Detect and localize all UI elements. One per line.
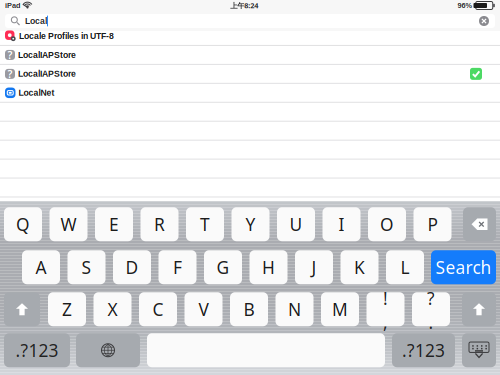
button[interactable]: Q [4,207,42,241]
button[interactable] [4,292,40,326]
staticText: O [380,213,394,236]
staticText: P [427,213,437,236]
button[interactable]: M [321,292,359,326]
button[interactable]: G [204,250,242,284]
button[interactable] [462,333,496,367]
staticText: K [354,256,365,279]
staticText: LocalIAPStore [18,69,76,79]
button[interactable]: W [49,207,87,241]
staticText: .?123 [402,339,445,362]
staticText: Search [435,256,491,279]
staticText: N [288,298,301,321]
staticText: A [35,256,46,279]
button[interactable]: Search field [5,14,495,28]
staticText: ? [427,287,435,310]
staticText: 上午8:24 [230,0,258,10]
button[interactable]: Y [231,207,269,241]
button[interactable]: R [140,207,178,241]
staticText: S [81,256,91,279]
button[interactable]: Search [431,250,496,284]
staticText: F [173,256,182,279]
staticText: V [198,298,208,321]
staticText: LocalIAPStore [18,50,76,60]
button[interactable]: Z [48,292,86,326]
button[interactable] [463,207,496,241]
staticText: T [200,213,210,236]
button[interactable]: C [139,292,177,326]
button[interactable]: T [186,207,224,241]
button[interactable]: ? [0,65,500,84]
button[interactable] [147,333,385,367]
button[interactable]: P [413,207,451,241]
staticText: E [109,213,119,236]
staticText: iPad [5,1,20,10]
button[interactable] [76,333,140,367]
button[interactable]: Locale Profiles in UTF-8 [0,27,500,46]
button[interactable]: .?123 [4,333,70,367]
staticText: 96% [457,1,472,10]
button[interactable]: J [295,250,333,284]
staticText: U [289,213,302,236]
staticText: Local [25,16,47,26]
staticText: X [107,298,117,321]
button[interactable]: ? [0,46,500,65]
staticText: Q [16,213,30,236]
staticText: C [152,298,163,321]
button[interactable] [462,292,496,326]
staticText: D [125,256,138,279]
staticText: R [154,213,165,236]
staticText: . [428,311,433,334]
button[interactable]: O [368,207,406,241]
staticText: B [243,298,254,321]
button[interactable]: D [113,250,151,284]
button[interactable]: ? [412,292,450,326]
staticText: L [400,256,409,279]
button[interactable]: S [67,250,105,284]
button[interactable]: F [158,250,196,284]
staticText: M [332,298,348,321]
button[interactable]: X [93,292,131,326]
button[interactable]: ! [366,292,404,326]
button[interactable]: H [249,250,287,284]
staticText: H [262,256,275,279]
staticText: Locale Profiles in UTF-8 [19,31,114,41]
button[interactable]: .?123 [392,333,455,367]
staticText: , [383,311,388,334]
staticText: J [311,256,316,279]
button[interactable]: B [230,292,268,326]
button[interactable]: V [184,292,222,326]
button[interactable]: N [275,292,313,326]
staticText: .?123 [15,339,58,362]
button[interactable]: L [386,250,424,284]
button[interactable]: A [22,250,60,284]
button[interactable]: U [277,207,315,241]
button[interactable]: K [340,250,378,284]
staticText: LocalNet [18,88,54,98]
staticText: I [338,213,344,236]
staticText: ? [7,67,12,81]
staticText: Z [62,298,72,321]
staticText: W [60,213,76,236]
button[interactable]: I [322,207,360,241]
staticText: ! [383,287,388,310]
staticText: Y [245,213,255,236]
button[interactable]: LocalNet [0,84,500,103]
button[interactable]: E [95,207,133,241]
staticText: ? [7,48,12,62]
staticText: G [216,256,229,279]
